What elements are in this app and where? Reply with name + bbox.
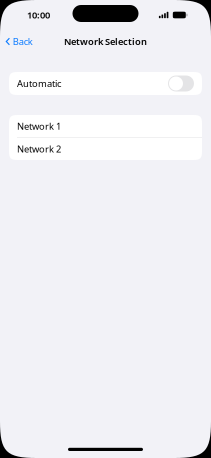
staticText: 10:00 <box>27 9 50 21</box>
button[interactable]: Network 2 <box>9 138 202 160</box>
button[interactable]: Automatic <box>9 72 202 95</box>
button[interactable]: Network 1 <box>9 115 202 137</box>
staticText: Network 2 <box>17 143 61 155</box>
staticText: Network 1 <box>17 120 61 132</box>
staticText: Network Selection <box>64 35 147 48</box>
staticText: Automatic <box>17 77 61 90</box>
button[interactable]: Back <box>0 31 33 52</box>
staticText: Back <box>13 35 33 48</box>
